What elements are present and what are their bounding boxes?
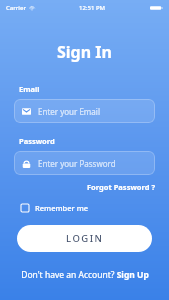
button[interactable]: Forgot Password ? <box>85 180 157 194</box>
button[interactable]: Email <box>14 99 155 123</box>
staticText: Sign In <box>57 41 112 63</box>
other: Password <box>22 159 31 168</box>
staticText: Enter your Email <box>38 106 100 117</box>
other: Email <box>22 107 31 116</box>
staticText: Remember me <box>35 203 89 213</box>
button[interactable]: Password <box>14 151 155 175</box>
staticText: Password <box>19 136 55 146</box>
staticText: Carrier <box>6 4 26 12</box>
button[interactable]: Don't have an Account? Sign Up <box>17 267 153 283</box>
staticText: Email <box>19 84 40 94</box>
staticText: Forgot Password ? <box>87 182 155 192</box>
button[interactable]: Remember me <box>19 200 91 216</box>
staticText: Don't have an Account? Sign Up <box>21 269 149 281</box>
staticText: LOGIN <box>66 232 104 245</box>
staticText: Enter your Password <box>38 158 116 169</box>
staticText: 12:51 PM <box>79 4 106 12</box>
button[interactable]: LOGIN <box>17 225 152 252</box>
